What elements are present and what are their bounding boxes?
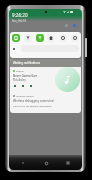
staticText: Spotify xyxy=(16,69,24,72)
staticText: Sun, Feb 18 xyxy=(12,19,27,23)
button[interactable]: User settings xyxy=(65,24,68,27)
button[interactable]: Brightness slider xyxy=(12,45,79,52)
button[interactable]: Quick setting 0 xyxy=(12,34,20,42)
button[interactable]: Home xyxy=(43,160,49,166)
button[interactable]: Play xyxy=(21,84,24,87)
staticText: Tap to turn off wireless debugging xyxy=(13,104,52,107)
button[interactable]: Quick setting 5 xyxy=(71,34,79,42)
staticText: Waiting notifications xyxy=(13,61,40,65)
staticText: Android System xyxy=(16,94,34,97)
staticText: 9:26:20 xyxy=(12,12,28,18)
button[interactable]: Quick setting 1 xyxy=(24,34,32,42)
button[interactable]: Recent apps xyxy=(65,160,71,166)
button[interactable]: Quick setting 4 xyxy=(59,34,67,42)
button[interactable]: Spotify xyxy=(10,67,81,92)
staticText: Never Gonna Give xyxy=(13,74,38,78)
button[interactable]: Back xyxy=(20,160,26,166)
button[interactable]: Quick setting 3 xyxy=(47,34,55,42)
staticText: Wireless debugging connected xyxy=(13,99,54,103)
button[interactable]: Next track xyxy=(29,84,32,87)
staticText: Rick Astley xyxy=(13,78,26,82)
button[interactable]: Previous track xyxy=(13,84,16,87)
button[interactable]: Quick setting 2 xyxy=(36,34,44,42)
button[interactable]: Power button xyxy=(85,38,87,57)
button[interactable]: Power menu xyxy=(73,24,76,27)
button[interactable]: Android System xyxy=(10,92,81,113)
